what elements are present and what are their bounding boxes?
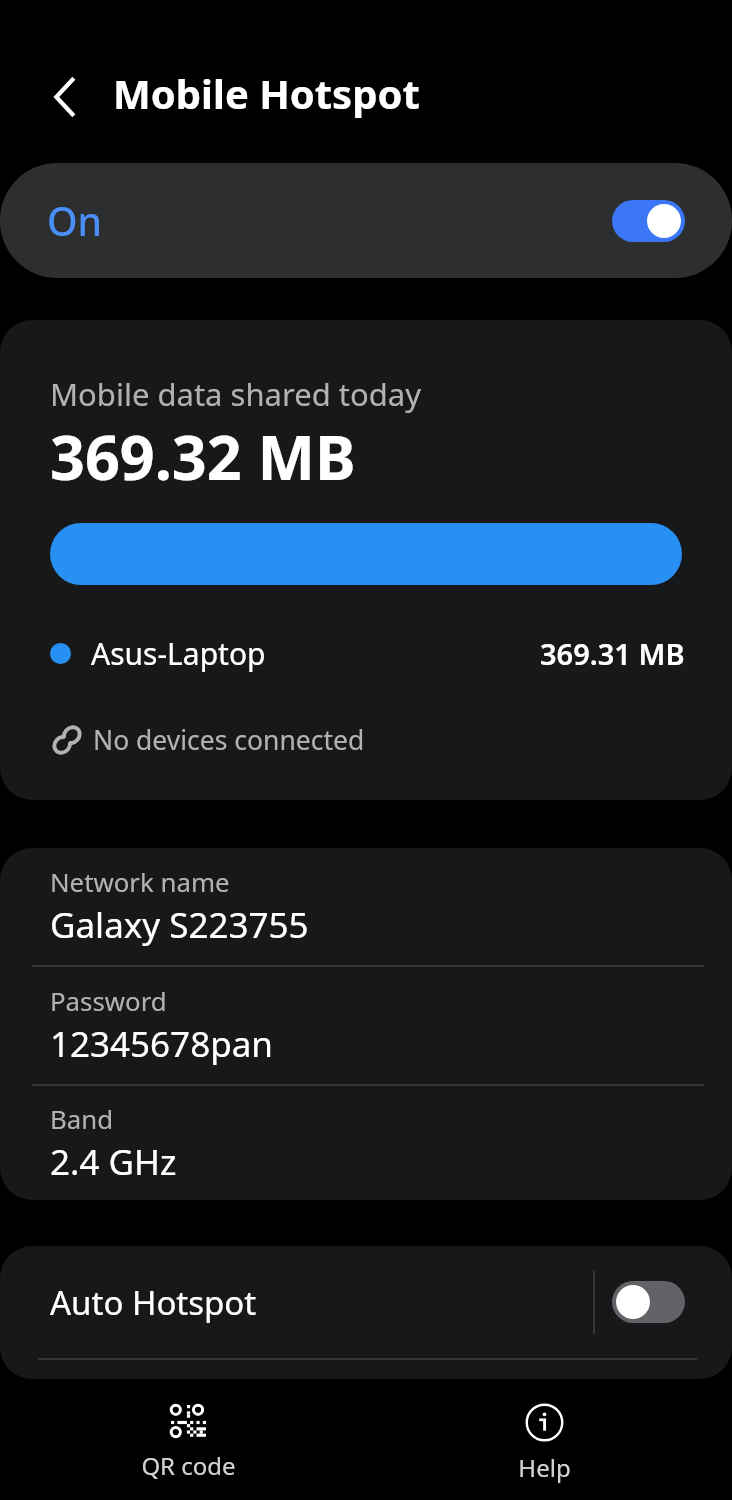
button[interactable]: Turn on bbox=[612, 1281, 685, 1323]
button[interactable]: Help bbox=[361, 1376, 727, 1500]
staticText: Help bbox=[518, 1451, 571, 1484]
button[interactable]: Password bbox=[0, 967, 732, 1084]
staticText: No devices connected bbox=[93, 722, 365, 758]
staticText: Mobile data shared today bbox=[50, 373, 421, 415]
staticText: Asus-Laptop bbox=[91, 633, 266, 674]
staticText: 369.31 MB bbox=[540, 634, 685, 673]
button[interactable]: Auto Hotspot bbox=[0, 1246, 732, 1358]
button[interactable]: Turn off hotspot bbox=[612, 200, 685, 242]
button[interactable]: Band bbox=[0, 1086, 732, 1200]
staticText: 12345678pan bbox=[50, 1020, 273, 1068]
staticText: Mobile Hotspot bbox=[113, 66, 420, 120]
staticText: Auto Hotspot bbox=[50, 1280, 257, 1325]
staticText: Band bbox=[50, 1101, 114, 1136]
button[interactable]: On bbox=[0, 163, 732, 278]
staticText: On bbox=[47, 194, 103, 247]
staticText: 369.32 MB bbox=[50, 415, 356, 498]
staticText: Galaxy S223755 bbox=[50, 901, 309, 949]
staticText: Network name bbox=[50, 864, 230, 899]
button[interactable]: Back bbox=[29, 60, 103, 134]
button[interactable]: Network name bbox=[0, 848, 732, 965]
staticText: QR code bbox=[141, 1449, 236, 1482]
staticText: 2.4 GHz bbox=[50, 1138, 177, 1186]
button[interactable]: QR code bbox=[5, 1376, 371, 1500]
staticText: Password bbox=[50, 983, 167, 1018]
